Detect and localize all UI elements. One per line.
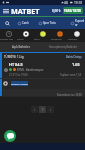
button[interactable]: Canlı bbox=[18, 21, 29, 25]
staticText: 1 bbox=[42, 108, 44, 112]
staticText: 21.01 Cts 19:00 bbox=[9, 73, 28, 77]
staticText: Kazandıran ise 28,85 bbox=[57, 93, 83, 97]
staticText: PARA YATIR bbox=[64, 9, 82, 13]
button[interactable]: Kuponu Göster bbox=[11, 81, 28, 86]
button[interactable]: Chat bbox=[4, 130, 16, 142]
staticText: Kuponlar bbox=[75, 19, 85, 27]
staticText: 4G bbox=[64, 1, 69, 5]
button[interactable]: Voleybol bbox=[68, 29, 85, 42]
button[interactable]: PARA YATIR bbox=[63, 7, 83, 14]
staticText: TÜRKİYE: 1.Lig bbox=[4, 55, 24, 59]
button[interactable]: Tenis bbox=[34, 29, 51, 42]
staticText: Açık Bahisler bbox=[12, 45, 30, 49]
button[interactable]: Kuponlar bbox=[71, 19, 85, 27]
staticText: Kuponu Göster bbox=[11, 82, 28, 85]
button[interactable]: 1 bbox=[39, 106, 46, 113]
button[interactable]: Basketbol bbox=[51, 29, 68, 42]
staticText: ‹ bbox=[34, 108, 35, 112]
button[interactable]: Açık Bahisler bbox=[0, 42, 42, 52]
staticText: HT 84.5 bbox=[9, 62, 23, 67]
staticText: Voleybol bbox=[68, 38, 85, 41]
staticText: MATBET bbox=[11, 6, 40, 16]
button[interactable]: ‹ bbox=[31, 106, 38, 113]
staticText: Toplam oran 1,65 bbox=[60, 73, 82, 77]
button[interactable]: Menu bbox=[1, 6, 10, 15]
button[interactable]: › bbox=[47, 106, 54, 113]
staticText: › bbox=[50, 108, 51, 112]
staticText: Basketbol bbox=[51, 38, 68, 41]
staticText: Canlı bbox=[22, 21, 29, 25]
staticText: Tenis bbox=[34, 38, 51, 41]
button[interactable]: Spor Toto bbox=[39, 21, 56, 25]
button[interactable]: TÜRKİYE: 1.Lig bbox=[0, 53, 85, 97]
staticText: Sonraki Maç bbox=[0, 38, 17, 41]
staticText: 0,00 ₺ bbox=[52, 9, 61, 13]
staticText: 19:10 bbox=[74, 1, 83, 5]
staticText: Spor Toto bbox=[43, 21, 56, 25]
staticText: 1.65 bbox=[72, 62, 80, 67]
button[interactable]: Futbol bbox=[17, 29, 34, 42]
button[interactable]: Sonuçlanmış Bahisler bbox=[42, 42, 85, 52]
staticText: BYMS - Bandırmaspor bbox=[17, 68, 44, 72]
staticText: Sonuçlanmış Bahisler bbox=[49, 45, 78, 49]
staticText: Futbol bbox=[17, 38, 34, 41]
staticText: Bahis Detayı bbox=[66, 55, 82, 59]
button[interactable]: Sonraki Maç bbox=[0, 29, 17, 42]
button[interactable]: Search bbox=[3, 19, 11, 27]
